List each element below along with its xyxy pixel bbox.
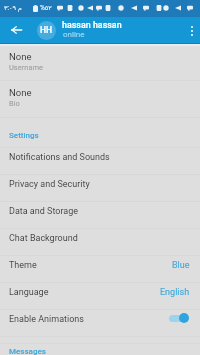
staticText: Notifications and Sounds	[9, 152, 110, 163]
button[interactable]: More options	[184, 17, 200, 44]
staticText: Data and Storage	[9, 206, 78, 217]
button[interactable]: Theme	[0, 255, 200, 282]
button[interactable]: Enable Animations	[0, 309, 200, 336]
staticText: Settings	[9, 131, 39, 140]
staticText: Language	[9, 287, 49, 298]
button[interactable]: Data and Storage	[0, 201, 200, 228]
staticText: English	[160, 287, 190, 298]
staticText: Chat Background	[9, 233, 78, 244]
button[interactable]: None	[0, 47, 200, 80]
button[interactable]: Language	[0, 282, 200, 309]
staticText: Blue	[172, 260, 190, 271]
button[interactable]: Privacy and Security	[0, 174, 200, 201]
button[interactable]: Notifications and Sounds	[0, 147, 200, 174]
staticText: Enable Animations	[9, 314, 84, 325]
staticText: HH	[40, 25, 53, 35]
staticText: online	[63, 30, 85, 39]
staticText: hassan hassan	[62, 20, 122, 30]
button[interactable]: None	[0, 83, 200, 116]
staticText: Bio	[9, 99, 20, 108]
staticText: Theme	[9, 260, 37, 271]
staticText: None	[9, 87, 32, 98]
staticText: None	[9, 51, 32, 62]
button[interactable]: Back	[0, 17, 32, 44]
staticText: Privacy and Security	[9, 179, 90, 190]
staticText: %٥٢	[40, 4, 52, 12]
button[interactable]: HH	[37, 21, 56, 40]
staticText: Username	[9, 63, 44, 72]
staticText: م ٣:٠٩	[4, 4, 22, 12]
staticText: Messages	[9, 347, 46, 355]
button[interactable]: Chat Background	[0, 228, 200, 255]
